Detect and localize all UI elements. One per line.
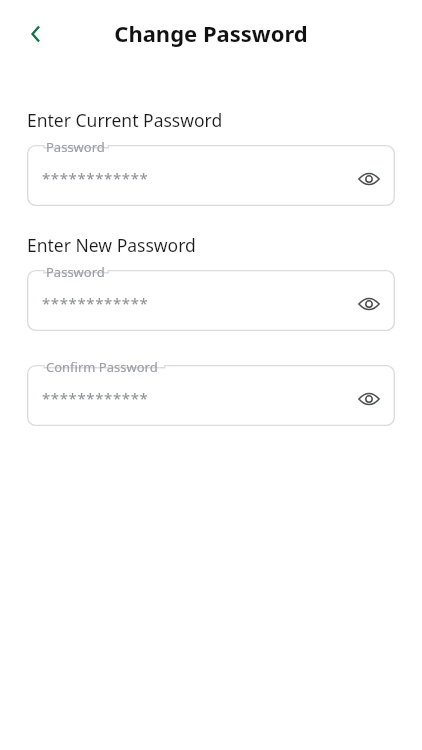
staticText: Enter Current Password — [27, 108, 223, 132]
button[interactable]: Confirm Password — [27, 365, 395, 426]
staticText: Password — [46, 138, 105, 156]
staticText: ************ — [42, 293, 149, 313]
button[interactable]: Show password — [349, 284, 389, 324]
staticText: Confirm Password — [46, 358, 158, 376]
staticText: Change Password — [114, 18, 308, 48]
staticText: ************ — [42, 168, 149, 188]
button[interactable]: Password — [27, 270, 395, 331]
staticText: Enter New Password — [27, 233, 196, 257]
button[interactable]: Back — [16, 14, 56, 54]
staticText: ************ — [42, 388, 149, 408]
button[interactable]: Password — [27, 145, 395, 206]
button[interactable]: Show password — [349, 379, 389, 419]
button[interactable]: Show password — [349, 159, 389, 199]
staticText: Password — [46, 263, 105, 281]
